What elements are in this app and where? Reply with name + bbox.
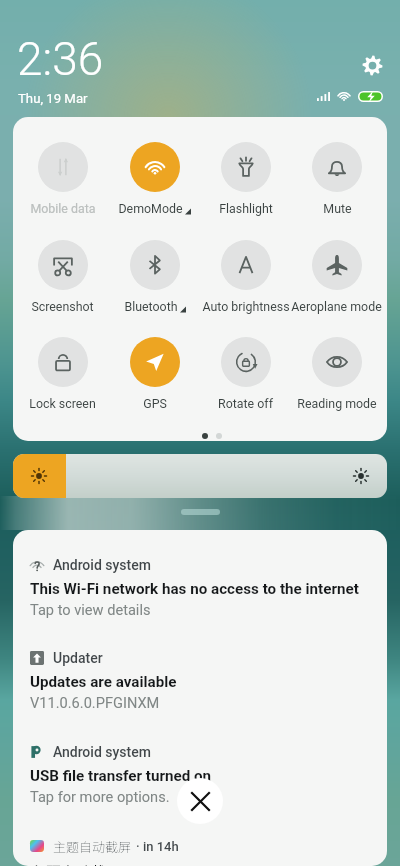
button[interactable]: Flashlight [200, 142, 291, 217]
staticText: Tap for more options. [30, 788, 170, 805]
staticText: 主题自动截屏 [53, 837, 132, 856]
button[interactable]: Android system [30, 556, 375, 618]
button[interactable]: Bluetooth [109, 240, 200, 315]
button[interactable]: Brightness [13, 454, 387, 498]
staticText: GPS [143, 396, 167, 411]
staticText: This Wi-Fi network has no access to the … [30, 580, 359, 598]
button[interactable]: Close [177, 778, 223, 824]
staticText: Auto brightness [202, 299, 290, 314]
staticText: DemoMode [118, 201, 183, 216]
button[interactable]: DemoMode [109, 142, 200, 217]
staticText: USB file transfer turned on [30, 767, 212, 785]
button[interactable]: Lock screen [17, 337, 108, 412]
staticText: Android system [53, 557, 151, 573]
staticText: Lock screen [29, 396, 96, 411]
staticText: Android system [53, 744, 151, 760]
staticText: Thu, 19 Mar [18, 91, 88, 106]
button[interactable]: Reading mode [291, 337, 382, 412]
staticText: Tap to view details [30, 601, 151, 618]
staticText: Aeroplane mode [291, 299, 382, 314]
staticText: 2:36 [17, 32, 104, 86]
button[interactable]: Screenshot [17, 240, 108, 315]
button[interactable]: GPS [109, 337, 200, 412]
staticText: Updates are available [30, 673, 177, 691]
button[interactable]: Mute [291, 142, 382, 217]
staticText: Bluetooth [124, 299, 178, 314]
button[interactable]: Updater [30, 649, 375, 711]
staticText: Reading mode [297, 396, 377, 411]
button[interactable]: Auto brightness [200, 240, 291, 315]
button[interactable]: Aeroplane mode [291, 240, 382, 315]
staticText: · in 14h [136, 839, 179, 854]
staticText: Mute [323, 201, 352, 216]
button[interactable]: Mobile data [17, 142, 108, 217]
staticText: V11.0.6.0.PFGINXM [30, 694, 160, 711]
staticText: 主题自动截屏 [30, 860, 122, 866]
button[interactable]: 主题自动截屏 [30, 836, 179, 856]
button[interactable]: Android system [30, 743, 375, 805]
staticText: Flashlight [219, 201, 273, 216]
button[interactable]: Settings [360, 53, 385, 78]
staticText: Rotate off [218, 396, 273, 411]
staticText: Screenshot [31, 299, 94, 314]
button[interactable]: Rotate off [200, 337, 291, 412]
staticText: Mobile data [30, 201, 96, 216]
staticText: Updater [53, 650, 103, 666]
